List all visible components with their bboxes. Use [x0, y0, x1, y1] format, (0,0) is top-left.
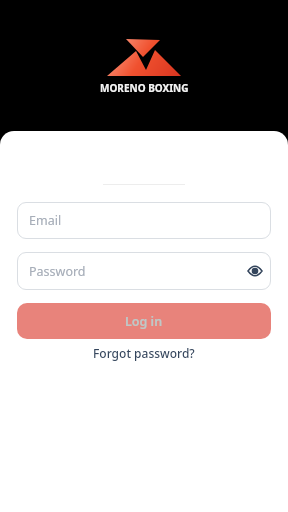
button[interactable]: Password — [17, 252, 271, 290]
button[interactable]: Email — [17, 202, 271, 239]
staticText: MORENO BOXING — [100, 81, 189, 95]
staticText: Log in — [125, 313, 163, 330]
button[interactable]: Log in — [17, 303, 271, 339]
button[interactable] — [246, 262, 264, 280]
staticText: Password — [29, 263, 86, 280]
staticText: Email — [29, 212, 62, 229]
button[interactable]: Forgot password? — [93, 345, 195, 361]
